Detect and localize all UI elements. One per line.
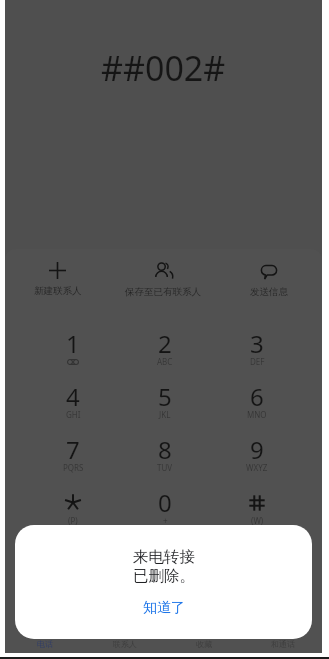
staticText: 8 [158, 433, 172, 466]
button[interactable]: 和通话 [243, 633, 322, 653]
staticText: JKL [159, 409, 171, 420]
staticText: 3 [250, 327, 264, 360]
staticText: MNO [247, 409, 267, 420]
button[interactable]: (P) [27, 479, 119, 532]
button[interactable]: Send message [216, 257, 322, 299]
button[interactable]: 3 [211, 320, 303, 373]
staticText: 新建联系人 [34, 285, 82, 297]
staticText: TUV [157, 462, 173, 473]
button[interactable]: 7 [27, 426, 119, 479]
button[interactable]: 2 [119, 320, 211, 373]
button[interactable]: 1 [27, 320, 119, 373]
button[interactable]: 9 [211, 426, 303, 479]
staticText: 2 [158, 327, 172, 360]
staticText: 和通话 [271, 639, 295, 649]
staticText: 知道了 [143, 599, 185, 617]
staticText: DEF [250, 356, 265, 367]
button[interactable]: 电话 [5, 633, 85, 653]
button[interactable]: 4 [27, 373, 119, 426]
staticText: 收藏 [196, 639, 212, 649]
button[interactable]: 收藏 [164, 633, 243, 653]
other: Send message [260, 262, 278, 280]
staticText: ABC [157, 356, 173, 367]
staticText: 联系人 [113, 639, 137, 649]
staticText: 0 [158, 486, 172, 519]
button[interactable]: 6 [211, 373, 303, 426]
staticText: 9 [250, 433, 264, 466]
staticText: (W) [251, 515, 264, 526]
staticText: + [163, 515, 168, 526]
button[interactable]: 8 [119, 426, 211, 479]
button[interactable]: (W) [211, 479, 303, 532]
staticText: 5 [158, 380, 172, 413]
staticText: 电话 [37, 639, 53, 649]
button[interactable]: Add [5, 257, 110, 299]
button[interactable]: Save to existing contact [110, 257, 216, 299]
button[interactable]: 知道了 [133, 596, 195, 620]
other: Add [49, 262, 66, 279]
staticText: 来电转接 已删除。 [133, 547, 195, 586]
staticText: 发送信息 [250, 286, 288, 298]
staticText: 1 [66, 327, 80, 360]
staticText: GHI [66, 409, 81, 420]
staticText: 7 [66, 433, 80, 466]
staticText: (P) [68, 515, 78, 526]
staticText: 保存至已有联系人 [125, 286, 201, 298]
button[interactable]: 联系人 [85, 633, 164, 653]
staticText: PQRS [63, 462, 84, 473]
staticText: WXYZ [246, 462, 268, 473]
staticText: 6 [250, 380, 264, 413]
button[interactable]: 0 [119, 479, 211, 532]
staticText: 4 [66, 380, 80, 413]
staticText: ##002# [101, 45, 226, 91]
button[interactable]: 5 [119, 373, 211, 426]
other: Save to existing contact [154, 262, 172, 280]
